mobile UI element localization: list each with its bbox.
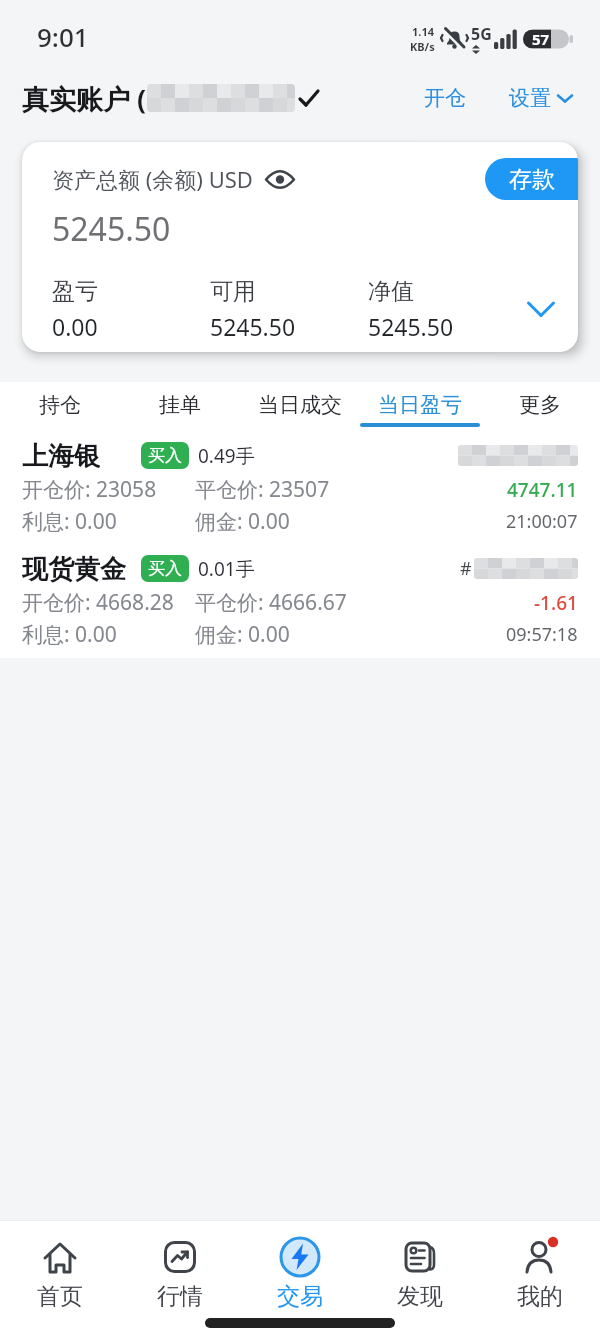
staticText: 当日盈亏 (378, 392, 462, 418)
staticText: 0.01手 (198, 556, 255, 582)
staticText: 5G (471, 23, 492, 45)
staticText: 利息: 0.00 (22, 507, 117, 536)
staticText: 发现 (397, 1282, 443, 1311)
staticText: 佣金: 0.00 (195, 620, 290, 649)
staticText: 开仓价: 23058 (22, 475, 157, 504)
staticText: 净值 (368, 277, 414, 306)
button[interactable]: 挂单 (120, 382, 240, 432)
staticText: # (460, 556, 472, 581)
button[interactable]: 持仓 (0, 382, 120, 432)
staticText: 利息: 0.00 (22, 620, 117, 649)
staticText: 资产总额 (余额) USD (52, 164, 253, 194)
staticText: 5245.50 (52, 207, 171, 251)
staticText: 平仓价: 23507 (195, 475, 330, 504)
staticText: 开仓 (424, 85, 466, 111)
button[interactable]: 现货黄金 (0, 545, 600, 658)
staticText: 佣金: 0.00 (195, 507, 290, 536)
staticText: 我的 (517, 1282, 563, 1311)
staticText: 盈亏 (52, 277, 98, 306)
staticText: 上海银 (22, 440, 100, 471)
staticText: 存款 (509, 165, 555, 194)
staticText: 更多 (519, 392, 561, 418)
button[interactable]: 当日盈亏 (360, 382, 480, 432)
staticText: 设置 (509, 85, 551, 111)
button[interactable]: 更多 (480, 382, 600, 432)
staticText: 5245.50 (368, 311, 454, 342)
staticText: 1.14 (412, 24, 434, 39)
staticText: -1.61 (534, 590, 578, 616)
staticText: 当日成交 (258, 392, 342, 418)
staticText: KB/s (410, 39, 435, 54)
staticText: 5245.50 (210, 311, 296, 342)
button[interactable]: 首页 (0, 1235, 120, 1311)
button[interactable] (526, 301, 556, 318)
staticText: 0.00 (52, 311, 98, 342)
staticText: 行情 (157, 1282, 203, 1311)
button[interactable]: 发现 (360, 1235, 480, 1311)
button[interactable]: 当日成交 (240, 382, 360, 432)
staticText: 买入 (148, 558, 182, 579)
staticText: 真实账户 ( (22, 80, 147, 117)
staticText: 首页 (37, 1282, 83, 1311)
staticText: 0.49手 (198, 443, 255, 469)
button[interactable]: 我的 (480, 1235, 600, 1311)
staticText: 4747.11 (507, 477, 578, 503)
button[interactable]: 开仓 (424, 85, 466, 111)
button[interactable]: 行情 (120, 1235, 240, 1311)
staticText: 09:57:18 (506, 622, 578, 647)
staticText: 开仓价: 4668.28 (22, 588, 174, 617)
staticText: 平仓价: 4666.67 (195, 588, 347, 617)
staticText: 交易 (277, 1282, 323, 1311)
staticText: 买入 (148, 445, 182, 466)
button[interactable]: 交易 (240, 1235, 360, 1311)
staticText: 9:01 (37, 19, 89, 54)
staticText: 挂单 (159, 392, 201, 418)
staticText: 21:00:07 (506, 509, 578, 534)
staticText: 现货黄金 (22, 553, 126, 584)
staticText: 持仓 (39, 392, 81, 418)
button[interactable]: 设置 (509, 85, 573, 111)
staticText: 可用 (210, 277, 256, 306)
button[interactable]: 上海银 (0, 432, 600, 545)
button[interactable]: 存款 (485, 158, 578, 200)
staticText: 57 (532, 29, 550, 49)
